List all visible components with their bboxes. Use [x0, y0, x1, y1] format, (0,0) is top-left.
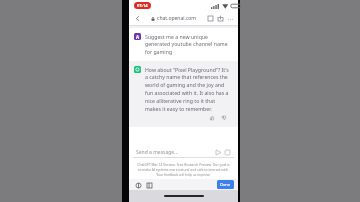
staticText: A — [136, 34, 140, 40]
button[interactable]: More options — [225, 13, 235, 23]
staticText: ChatGPT Mar 14 Version. Free Research Pr… — [136, 162, 231, 177]
button[interactable]: Share — [215, 13, 225, 23]
button[interactable]: Reader mode — [133, 180, 143, 190]
button[interactable]: Send — [215, 149, 222, 156]
staticText: ⋯ — [227, 15, 233, 22]
button[interactable]: Back — [132, 13, 142, 23]
staticText: 01:14 — [137, 3, 148, 9]
staticText: How about "Pixel Playground"? It's a cat… — [145, 66, 231, 112]
button[interactable]: Voice input — [224, 149, 231, 156]
staticText: chat.openai.com — [157, 15, 196, 22]
staticText: Done — [220, 182, 231, 187]
button[interactable]: Bookmarks — [205, 13, 215, 23]
staticText: Suggest me a new unique generated youtub… — [145, 33, 231, 55]
staticText: Send a message... — [136, 149, 179, 156]
button[interactable]: Done — [217, 180, 234, 189]
button[interactable]: Dislike — [219, 113, 229, 123]
button[interactable]: Tabs — [144, 180, 154, 190]
button[interactable]: Send a message... — [133, 146, 234, 158]
button[interactable]: Like — [207, 113, 217, 123]
button[interactable]: How about "Pixel Playground"? It's a cat… — [129, 61, 238, 127]
button[interactable]: chat.openai.com — [142, 15, 205, 22]
button[interactable]: A — [129, 28, 238, 61]
